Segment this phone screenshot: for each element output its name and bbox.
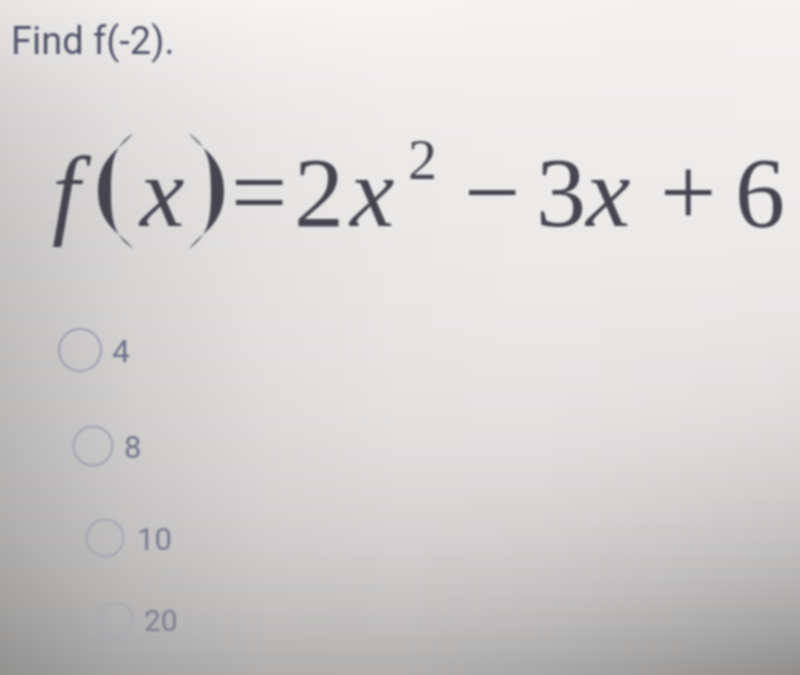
button[interactable]: Answer option 10 [78, 510, 298, 568]
button[interactable]: Answer option 8 [64, 418, 284, 476]
button[interactable]: Answer option 20 [90, 592, 310, 650]
button[interactable]: Answer option 4 [52, 322, 272, 380]
